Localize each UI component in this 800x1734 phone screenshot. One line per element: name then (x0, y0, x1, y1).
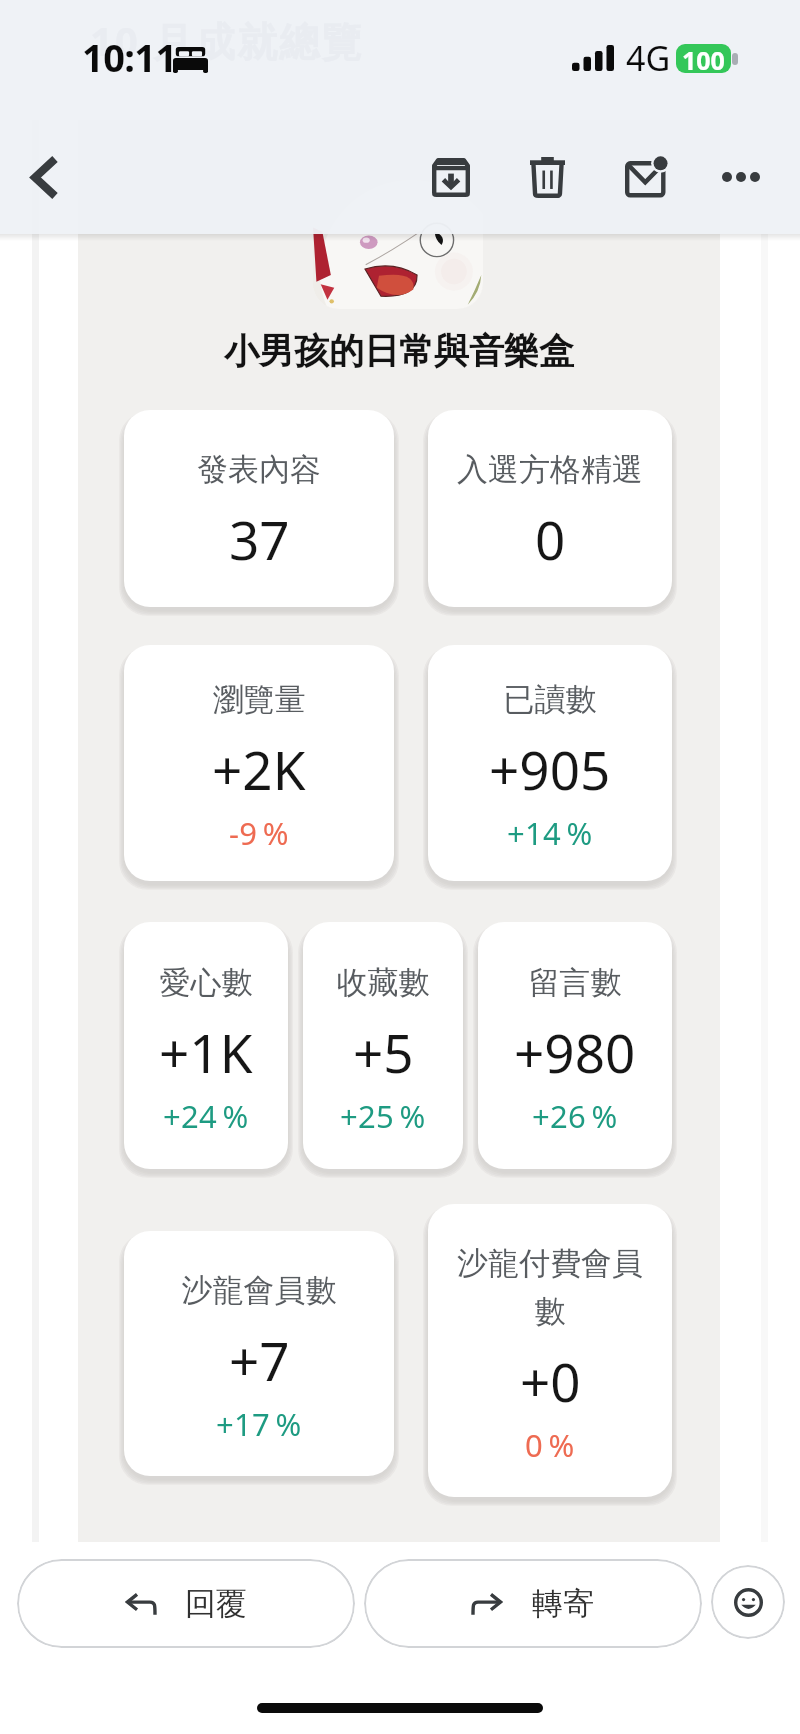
staticText: -9 % (229, 812, 289, 854)
staticText: 留言數 (478, 963, 672, 1002)
button[interactable]: Delete (502, 132, 592, 222)
button[interactable]: 回覆 (17, 1559, 355, 1648)
button[interactable]: Mark unread (602, 132, 692, 222)
button[interactable]: 轉寄 (364, 1559, 702, 1648)
staticText: 已讀數 (428, 680, 672, 719)
staticText: 瀏覽量 (124, 680, 394, 719)
button[interactable]: Back (6, 132, 84, 222)
staticText: +5 (353, 1016, 414, 1088)
staticText: 沙龍會員數 (124, 1271, 394, 1310)
staticText: 37 (229, 503, 290, 575)
button[interactable]: 已讀數 (428, 645, 672, 881)
button[interactable]: More options (696, 132, 786, 222)
staticText: 4G (626, 35, 671, 81)
staticText: +2K (212, 733, 306, 805)
staticText: +7 (229, 1324, 290, 1396)
staticText: 回覆 (185, 1584, 247, 1623)
button[interactable]: 沙龍會員數 (124, 1231, 394, 1476)
button[interactable]: 發表內容 (124, 410, 394, 607)
staticText: +14 % (507, 812, 593, 854)
staticText: +1K (159, 1016, 253, 1088)
staticText: 10 月成就總覽 (90, 13, 364, 68)
staticText: 入選方格精選 (428, 450, 672, 489)
staticText: 愛心數 (124, 963, 288, 1002)
staticText: +25 % (340, 1095, 426, 1137)
staticText: 100 (682, 44, 725, 72)
staticText: +905 (489, 733, 611, 805)
button[interactable]: 瀏覽量 (124, 645, 394, 881)
button[interactable]: 愛心數 (124, 922, 288, 1169)
button[interactable]: Archive (406, 132, 496, 222)
staticText: +24 % (163, 1095, 249, 1137)
staticText: 發表內容 (124, 450, 394, 489)
staticText: 沙龍付費會員數 (455, 1244, 645, 1331)
button[interactable]: 沙龍付費會員數 (428, 1204, 672, 1497)
staticText: 轉寄 (532, 1584, 594, 1623)
staticText: +17 % (216, 1403, 302, 1445)
button[interactable]: 留言數 (478, 922, 672, 1169)
staticText: +0 (520, 1345, 581, 1417)
button[interactable]: Emoji reaction (711, 1565, 785, 1639)
staticText: 0 % (525, 1424, 575, 1466)
staticText: 小男孩的日常與音樂盒 (78, 329, 720, 373)
staticText: 收藏數 (303, 963, 463, 1002)
button[interactable]: 入選方格精選 (428, 410, 672, 607)
staticText: +980 (514, 1016, 636, 1088)
staticText: 10:11 (82, 31, 177, 83)
button[interactable]: 收藏數 (303, 922, 463, 1169)
staticText: +26 % (532, 1095, 618, 1137)
staticText: 0 (535, 503, 566, 575)
